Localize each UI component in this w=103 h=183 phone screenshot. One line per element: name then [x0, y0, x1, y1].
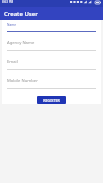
button[interactable]: Email: [7, 59, 96, 70]
button[interactable]: Agency Name: [7, 40, 96, 51]
button[interactable]: Name: [7, 23, 96, 32]
staticText: Agency Name: [7, 40, 35, 46]
staticText: Create User: [4, 10, 38, 18]
button[interactable]: REGISTER: [37, 96, 66, 104]
staticText: 8:53 PM: [2, 0, 14, 4]
button[interactable]: Mobile Number: [7, 78, 96, 89]
staticText: REGISTER: [43, 98, 60, 103]
staticText: Mobile Number: [7, 78, 38, 84]
staticText: Name: [7, 23, 16, 27]
staticText: Email: [7, 59, 18, 65]
